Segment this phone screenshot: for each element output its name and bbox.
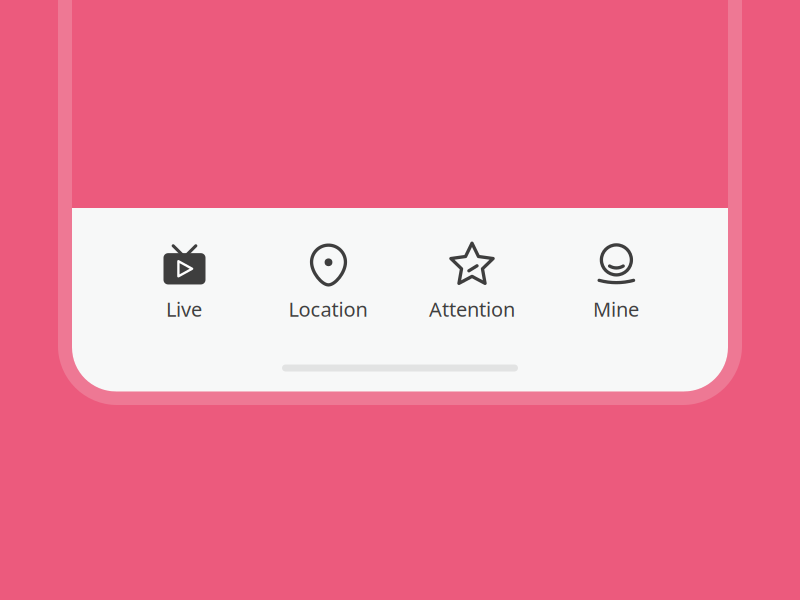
button[interactable]: Attention: [400, 226, 544, 336]
button[interactable]: Live: [112, 226, 256, 336]
staticText: Mine: [593, 296, 639, 322]
button[interactable]: Location: [256, 226, 400, 336]
staticText: Attention: [429, 296, 515, 322]
button[interactable]: Mine: [544, 226, 688, 336]
staticText: Live: [166, 296, 202, 322]
staticText: Location: [288, 296, 367, 322]
